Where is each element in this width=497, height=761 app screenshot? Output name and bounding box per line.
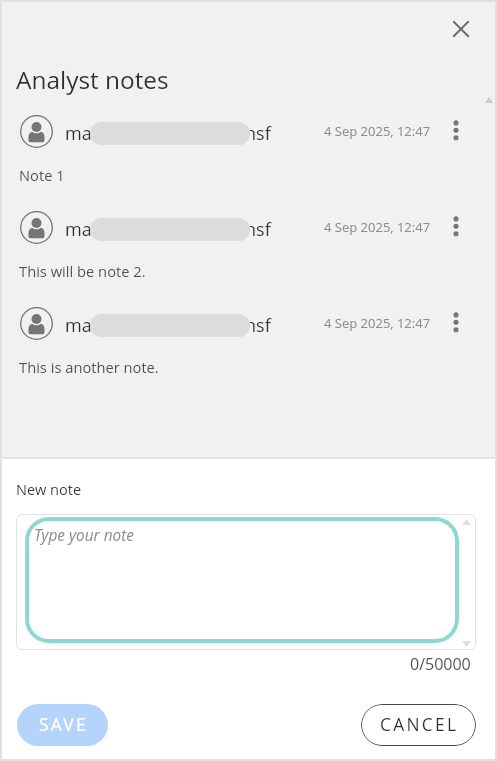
staticText: ma <box>65 217 92 242</box>
staticText: Note 1 <box>19 165 65 185</box>
staticText: SAVE <box>39 713 88 737</box>
staticText: 0/50000 <box>410 653 471 675</box>
staticText: nsf <box>245 121 271 146</box>
button[interactable]: SAVE <box>17 704 108 746</box>
button[interactable]: Type your note <box>25 517 459 643</box>
staticText: nsf <box>245 217 271 242</box>
staticText: nsf <box>245 313 271 338</box>
button[interactable]: CANCEL <box>361 704 476 746</box>
staticText: Type your note <box>34 525 134 546</box>
staticText: 4 Sep 2025, 12:47 <box>324 314 431 332</box>
button[interactable]: More options <box>438 200 474 252</box>
button[interactable]: More options <box>438 104 474 156</box>
staticText: 4 Sep 2025, 12:47 <box>324 122 431 140</box>
staticText: New note <box>16 479 82 499</box>
staticText: ma <box>65 121 92 146</box>
button[interactable]: Close <box>437 5 485 53</box>
staticText: This is another note. <box>19 357 159 377</box>
staticText: 4 Sep 2025, 12:47 <box>324 218 431 236</box>
staticText: CANCEL <box>380 713 459 737</box>
staticText: ma <box>65 313 92 338</box>
button[interactable]: More options <box>438 296 474 348</box>
staticText: Analyst notes <box>16 63 169 96</box>
staticText: This will be note 2. <box>19 261 146 281</box>
